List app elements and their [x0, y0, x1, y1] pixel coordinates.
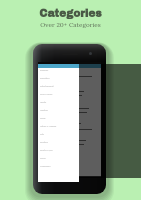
button[interactable]: Pets [40, 130, 81, 138]
staticText: Categories [39, 8, 102, 19]
staticText: Wallpapers [40, 165, 51, 168]
staticText: Education [40, 77, 50, 80]
staticText: Spiritual [40, 141, 48, 144]
staticText: Health [40, 101, 47, 104]
staticText: Nature & Animals [40, 125, 57, 128]
button[interactable]: Entertainment [40, 82, 81, 90]
button[interactable]: Spiritual [40, 138, 81, 146]
button[interactable]: Music [40, 114, 81, 122]
staticText: Travel [40, 157, 46, 160]
staticText: Sports & Golf [40, 149, 53, 152]
button[interactable]: Health [40, 98, 81, 106]
button[interactable]: Sports & Golf [40, 146, 81, 154]
staticText: Lifestyle [40, 109, 48, 112]
staticText: Business [40, 69, 49, 72]
button[interactable]: Food & Drink [40, 90, 81, 98]
button[interactable]: Travel [40, 154, 81, 162]
staticText: Entertainment [40, 85, 54, 88]
button[interactable]: Wallpapers [40, 162, 81, 170]
staticText: Food & Drink [40, 93, 53, 96]
staticText: Music [40, 117, 46, 120]
button[interactable]: Nature & Animals [40, 122, 81, 130]
button[interactable]: Business [40, 66, 81, 74]
staticText: Over 20+ Categories [40, 21, 101, 29]
staticText: Pets [40, 133, 44, 136]
button[interactable]: Lifestyle [40, 106, 81, 114]
button[interactable]: Education [40, 74, 81, 82]
